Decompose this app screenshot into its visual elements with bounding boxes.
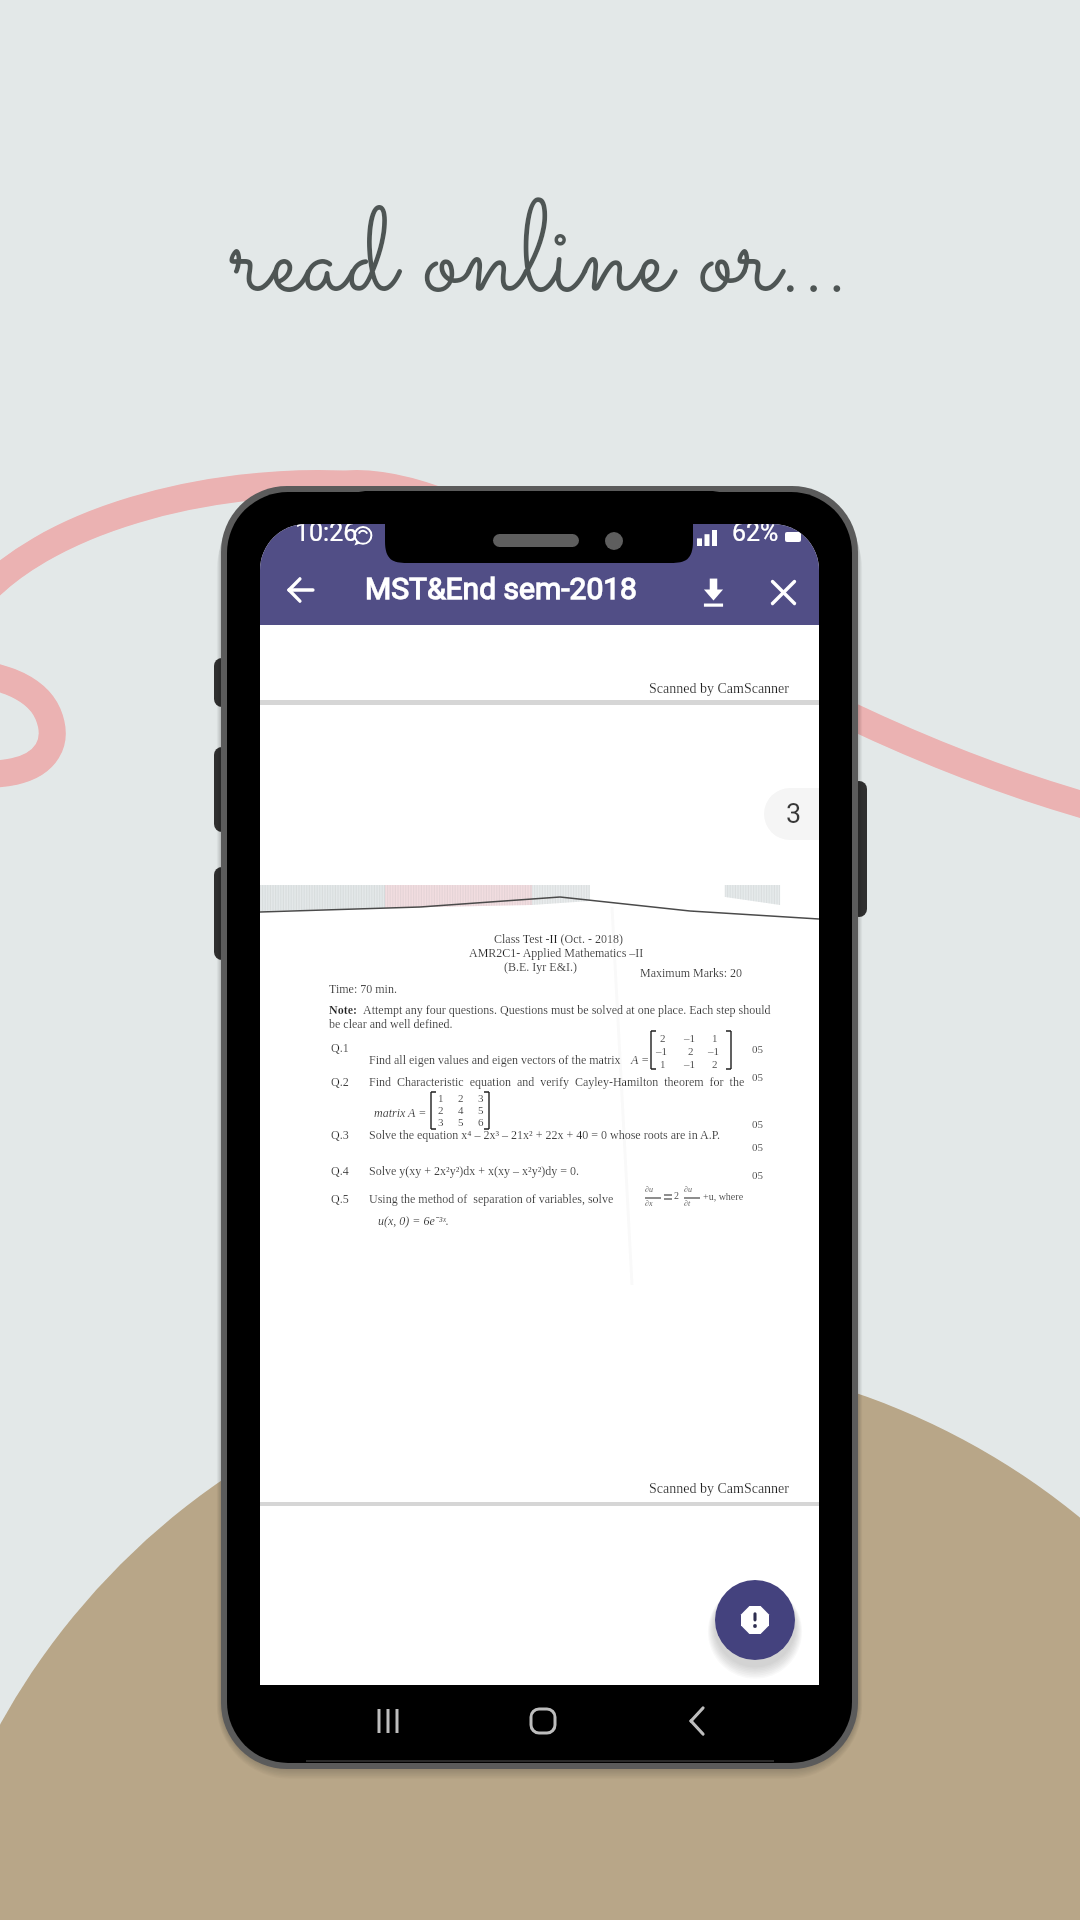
staticText: 3 xyxy=(438,1116,444,1128)
staticText: –1 xyxy=(684,1032,695,1044)
staticText: 3 xyxy=(786,798,802,830)
staticText: 4 xyxy=(458,1104,464,1116)
button[interactable]: 3 xyxy=(764,788,819,840)
staticText: –1 xyxy=(684,1058,695,1070)
staticText: A = xyxy=(631,1053,650,1066)
staticText: Scanned by CamScanner xyxy=(260,1481,789,1497)
staticText: 2 xyxy=(688,1045,694,1057)
staticText: Q.4 xyxy=(331,1164,349,1177)
button[interactable]: Back xyxy=(275,566,327,618)
staticText: ∂x xyxy=(645,1199,653,1208)
staticText: matrix A = xyxy=(374,1106,427,1119)
button[interactable]: Download xyxy=(687,566,739,618)
staticText: Find Characteristic equation and verify … xyxy=(369,1075,745,1088)
staticText: +u, where xyxy=(703,1191,744,1202)
staticText: Time: 70 min. xyxy=(329,982,397,995)
staticText: read online or... xyxy=(0,170,1080,358)
staticText: Q.2 xyxy=(331,1075,349,1088)
staticText: Note: xyxy=(329,1003,357,1016)
staticText: Q.1 xyxy=(331,1041,349,1054)
staticText: 6 xyxy=(478,1116,484,1128)
staticText: ∂t xyxy=(684,1199,691,1208)
staticText: 62% xyxy=(732,524,779,547)
staticText: Find all eigen values and eigen vectors … xyxy=(369,1053,621,1066)
staticText: 1 xyxy=(712,1032,718,1044)
staticText: –1 xyxy=(708,1045,719,1057)
staticText: 5 xyxy=(478,1104,484,1116)
staticText: 1 xyxy=(660,1058,666,1070)
staticText: be clear and well defined. xyxy=(329,1017,453,1030)
staticText: 05 xyxy=(752,1141,763,1153)
staticText: 05 xyxy=(752,1043,763,1055)
staticText: 2 xyxy=(438,1104,444,1116)
staticText: 10:26 xyxy=(295,524,358,547)
button[interactable]: Report a problem xyxy=(715,1580,795,1660)
staticText: ∂u xyxy=(684,1185,692,1194)
staticText: 5 xyxy=(458,1116,464,1128)
staticText: Class Test -II (Oct. - 2018) xyxy=(494,932,623,945)
staticText: 2 xyxy=(660,1032,666,1044)
staticText: Q.5 xyxy=(331,1192,349,1205)
staticText: Using the method of separation of variab… xyxy=(369,1192,614,1205)
staticText: ∂u xyxy=(645,1185,653,1194)
staticText: Maximum Marks: 20 xyxy=(640,966,742,979)
staticText: Solve the equation x⁴ – 2x³ – 21x² + 22x… xyxy=(369,1128,720,1141)
staticText: 05 xyxy=(752,1118,763,1130)
staticText: Q.3 xyxy=(331,1128,349,1141)
staticText: 2 xyxy=(458,1092,464,1104)
staticText: 05 xyxy=(752,1169,763,1181)
staticText: –1 xyxy=(656,1045,667,1057)
staticText: 2 xyxy=(712,1058,718,1070)
staticText: 3 xyxy=(478,1092,484,1104)
staticText: Solve y(xy + 2x²y²)dx + x(xy – x²y²)dy =… xyxy=(369,1164,580,1177)
staticText: Attempt any four questions. Questions mu… xyxy=(363,1003,771,1016)
staticText: Scanned by CamScanner xyxy=(260,681,789,697)
staticText: (B.E. Iyr E&I.) xyxy=(504,960,577,973)
staticText: 1 xyxy=(438,1092,444,1104)
staticText: AMR2C1- Applied Mathematics –II xyxy=(469,946,644,959)
staticText: 2 xyxy=(674,1190,679,1201)
button[interactable]: Close xyxy=(757,566,809,618)
staticText: 05 xyxy=(752,1071,763,1083)
staticText: MST&End sem-2018 xyxy=(365,571,637,606)
staticText: u(x, 0) = 6e⁻³ˣ. xyxy=(378,1212,449,1228)
